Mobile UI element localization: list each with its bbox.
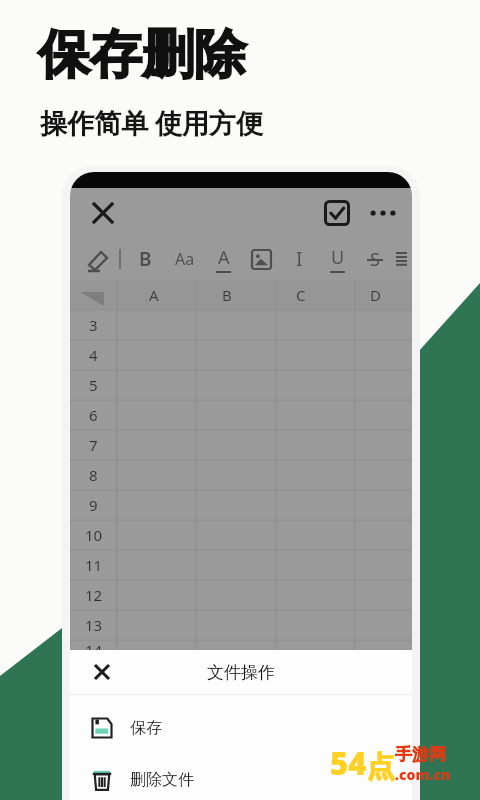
- button[interactable]: Aa: [165, 238, 204, 280]
- button[interactable]: A: [204, 238, 242, 280]
- staticText: 5: [89, 375, 98, 395]
- staticText: U: [331, 245, 345, 270]
- staticText: .com.cn: [395, 765, 451, 784]
- staticText: 8: [89, 465, 98, 485]
- button[interactable]: 删除文件: [70, 759, 412, 800]
- staticText: Aa: [175, 248, 195, 270]
- button[interactable]: I: [280, 238, 318, 280]
- button[interactable]: 保存: [70, 707, 412, 749]
- button[interactable]: Close sheet: [88, 658, 116, 686]
- staticText: 9: [89, 495, 98, 515]
- staticText: C: [296, 285, 306, 305]
- button[interactable]: B: [126, 238, 165, 280]
- button[interactable]: Align: [394, 238, 408, 280]
- staticText: 13: [85, 615, 103, 635]
- staticText: 删除文件: [130, 770, 194, 790]
- staticText: 保存: [130, 718, 162, 738]
- staticText: B: [139, 246, 152, 272]
- staticText: 7: [89, 435, 98, 455]
- staticText: 文件操作: [207, 662, 275, 683]
- button[interactable]: Confirm: [324, 200, 350, 226]
- staticText: I: [296, 246, 303, 272]
- staticText: 点: [367, 749, 395, 784]
- button[interactable]: S: [356, 238, 394, 280]
- staticText: A: [149, 285, 159, 305]
- staticText: 10: [85, 525, 103, 545]
- staticText: 手游网: [395, 744, 446, 765]
- staticText: 保存删除: [38, 22, 246, 88]
- staticText: 11: [85, 555, 103, 575]
- button[interactable]: U: [318, 238, 356, 280]
- staticText: 3: [89, 315, 98, 335]
- staticText: 6: [89, 405, 98, 425]
- staticText: B: [222, 285, 232, 305]
- button[interactable]: Close: [86, 196, 120, 230]
- staticText: 操作简单 使用方便: [40, 104, 264, 141]
- button[interactable]: More options: [368, 200, 398, 226]
- button[interactable]: Insert image: [242, 238, 280, 280]
- staticText: 14: [85, 640, 103, 650]
- staticText: 12: [85, 585, 103, 605]
- staticText: A: [218, 245, 230, 270]
- staticText: D: [370, 285, 381, 305]
- staticText: 4: [89, 345, 98, 365]
- staticText: 54: [330, 742, 367, 784]
- staticText: S: [370, 247, 380, 272]
